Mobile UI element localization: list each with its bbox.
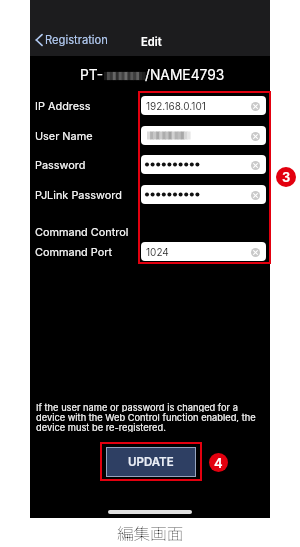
button[interactable]: Clear User Name	[249, 130, 261, 142]
staticText: 4	[214, 455, 223, 471]
button[interactable]: UPDATE	[106, 447, 196, 477]
staticText: PT-	[80, 67, 104, 84]
staticText: If the user name or password is changed …	[36, 402, 238, 412]
staticText: User Name	[35, 129, 93, 142]
staticText: Edit	[141, 35, 162, 49]
staticText: 192.168.0.101	[146, 100, 206, 112]
staticText: UPDATE	[128, 455, 174, 469]
staticText: IP Address	[35, 99, 91, 112]
button[interactable]: Registration	[32, 31, 111, 49]
staticText: Registration	[45, 33, 108, 47]
button[interactable]: Clear User Name	[141, 126, 266, 145]
staticText: Command Control	[35, 225, 129, 238]
staticText: device with the Web Control function ena…	[36, 412, 256, 422]
button[interactable]: Clear Command Port	[249, 246, 261, 258]
staticText: 3	[282, 169, 291, 185]
button[interactable]: Clear IP Address	[249, 100, 261, 112]
button[interactable]: 192.168.0.101	[141, 96, 266, 115]
button[interactable]: Clear Password	[141, 155, 266, 174]
staticText: PJLink Password	[35, 188, 122, 201]
staticText: Password	[35, 158, 86, 171]
staticText: Command Port	[35, 245, 113, 258]
button[interactable]: Clear PJLink Password	[141, 185, 266, 204]
staticText: 編集画面	[117, 521, 184, 545]
staticText: 1024	[146, 246, 169, 258]
button[interactable]: Clear Password	[249, 159, 261, 171]
button[interactable]: Edit	[137, 33, 166, 51]
staticText: device must be re-registered.	[36, 422, 166, 432]
button[interactable]: Clear PJLink Password	[249, 189, 261, 201]
staticText: /NAME4793	[145, 67, 225, 84]
button[interactable]: 1024	[141, 242, 266, 261]
